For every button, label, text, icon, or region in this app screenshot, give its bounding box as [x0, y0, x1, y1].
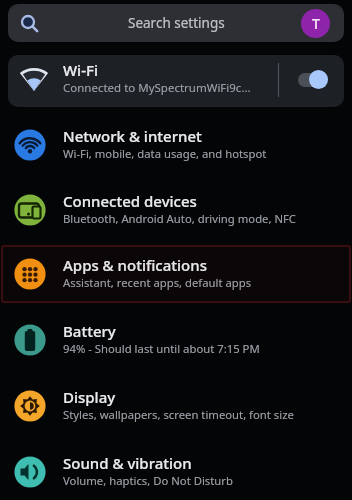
staticText: Wi-Fi [63, 60, 98, 80]
staticText: Assistant, recent apps, default apps [63, 275, 252, 290]
button[interactable]: Wi-Fi [8, 55, 344, 107]
button[interactable]: Search settings [8, 4, 344, 42]
button[interactable]: Apps & notifications [0, 243, 352, 305]
staticText: Connected to MySpectrumWiFi9c… [63, 80, 251, 96]
staticText: Battery [63, 321, 116, 341]
staticText: Bluetooth, Android Auto, driving mode, N… [63, 211, 297, 226]
button[interactable]: Display [0, 375, 352, 437]
button[interactable]: T [301, 9, 330, 38]
staticText: Display [63, 387, 116, 407]
staticText: T [312, 14, 320, 33]
button[interactable]: Network & internet [0, 114, 352, 176]
button[interactable]: Battery [0, 309, 352, 371]
button[interactable]: Sound & vibration [0, 441, 352, 500]
staticText: Search settings [128, 14, 225, 32]
staticText: Network & internet [63, 126, 202, 146]
staticText: Sound & vibration [63, 453, 192, 473]
button[interactable]: Connected devices [0, 179, 352, 241]
button[interactable] [298, 73, 328, 87]
staticText: Volume, haptics, Do Not Disturb [63, 473, 233, 488]
staticText: Wi-Fi, mobile, data usage, and hotspot [63, 146, 267, 161]
staticText: Connected devices [63, 191, 197, 211]
staticText: 94% - Should last until about 7:15 PM [63, 341, 260, 356]
staticText: Styles, wallpapers, screen timeout, font… [63, 407, 294, 422]
staticText: Apps & notifications [63, 255, 207, 275]
